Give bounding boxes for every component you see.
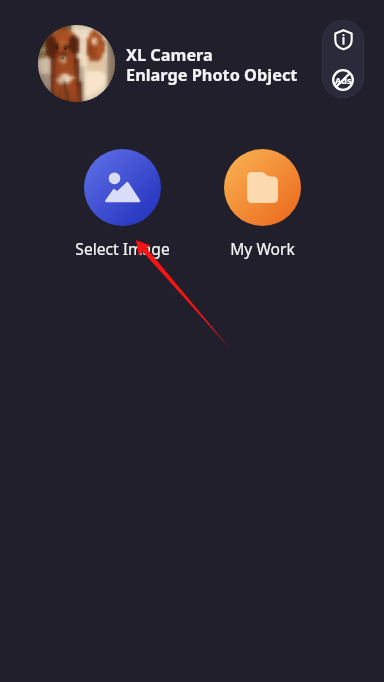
- staticText: Select Image: [75, 238, 170, 259]
- button[interactable]: Remove ads: [322, 59, 364, 98]
- button[interactable]: Profile photo: [38, 25, 115, 102]
- button[interactable]: My Work: [194, 149, 331, 259]
- staticText: Ads: [335, 74, 352, 86]
- staticText: XL Camera Enlarge Photo Object: [126, 44, 298, 86]
- button[interactable]: Select Image: [54, 149, 191, 259]
- staticText: My Work: [230, 238, 295, 259]
- button[interactable]: Privacy information: [322, 20, 364, 59]
